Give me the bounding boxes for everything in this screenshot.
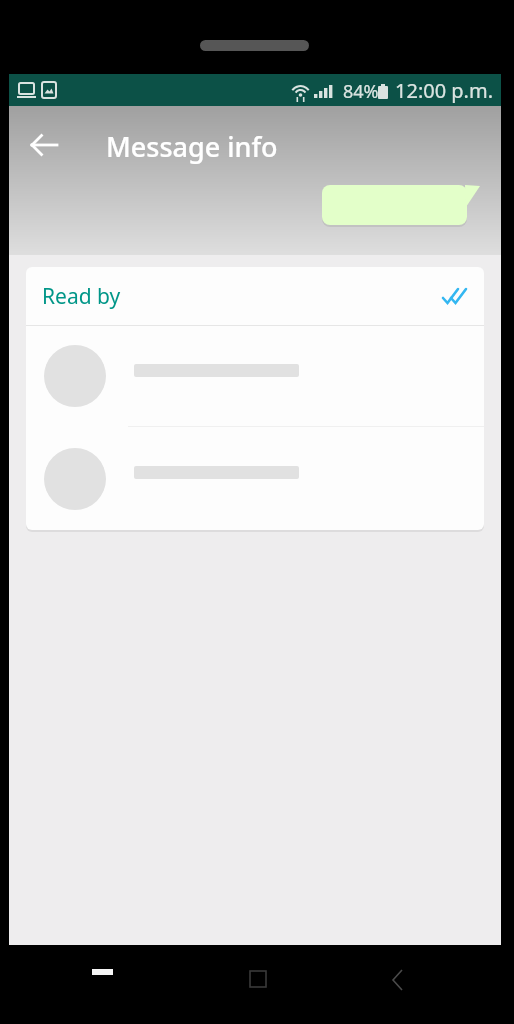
button[interactable] — [343, 945, 514, 1024]
button[interactable]: Read by — [26, 267, 484, 325]
button[interactable] — [20, 121, 68, 169]
button[interactable] — [172, 945, 343, 1024]
staticText: Read by — [42, 282, 121, 311]
staticText: 12:00 p.m. — [395, 77, 494, 104]
staticText: Message info — [106, 128, 278, 165]
staticText: 84% — [343, 79, 379, 104]
button[interactable] — [26, 326, 484, 426]
button[interactable] — [0, 945, 172, 1024]
button[interactable] — [26, 427, 484, 530]
